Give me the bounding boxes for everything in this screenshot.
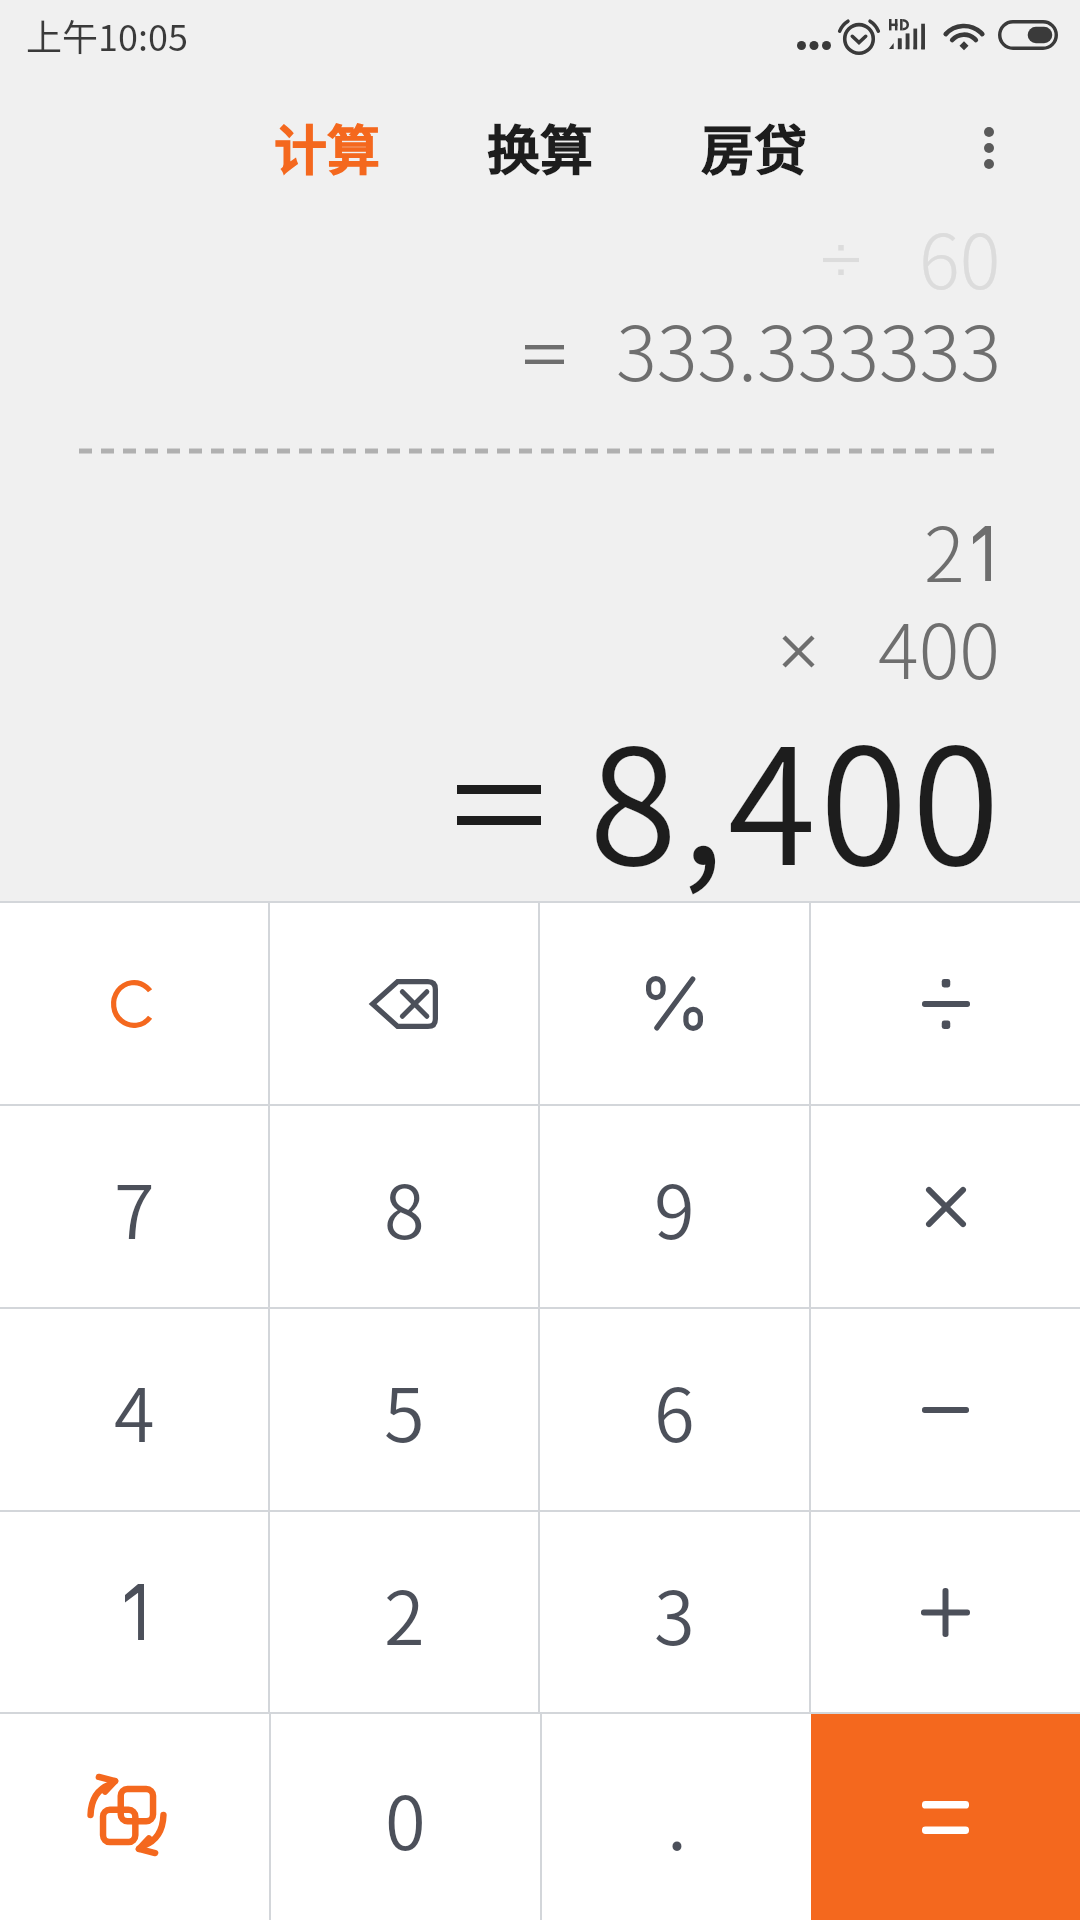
- staticText: 换算: [487, 109, 593, 186]
- button[interactable]: 6: [540, 1309, 809, 1510]
- staticText: 5: [384, 1356, 425, 1463]
- button[interactable]: Equals: [811, 1714, 1080, 1920]
- staticText: 7: [114, 1153, 155, 1260]
- button[interactable]: 3: [540, 1512, 809, 1712]
- staticText: 房贷: [701, 109, 807, 186]
- button[interactable]: Percent: [540, 903, 809, 1104]
- button[interactable]: Decimal point: [542, 1714, 811, 1920]
- button[interactable]: 换算: [465, 95, 615, 200]
- staticText: 2: [384, 1559, 425, 1666]
- staticText: 8: [384, 1153, 425, 1260]
- button[interactable]: 计算: [252, 95, 402, 200]
- button[interactable]: 4: [0, 1309, 268, 1510]
- button[interactable]: Backspace: [270, 903, 538, 1104]
- staticText: 计算: [274, 109, 380, 186]
- button[interactable]: 7: [0, 1106, 268, 1307]
- button[interactable]: Clear: [0, 903, 268, 1104]
- staticText: 333.333333: [616, 293, 1001, 403]
- staticText: 9: [654, 1153, 695, 1260]
- staticText: 0: [385, 1764, 426, 1871]
- staticText: 8,400: [589, 678, 1004, 911]
- staticText: .: [667, 1764, 687, 1871]
- button[interactable]: 2: [270, 1512, 538, 1712]
- button[interactable]: More options: [944, 103, 1034, 193]
- staticText: 4: [114, 1356, 155, 1463]
- button[interactable]: Unit converter: [0, 1714, 269, 1920]
- staticText: 6: [654, 1356, 695, 1463]
- button[interactable]: 9: [540, 1106, 809, 1307]
- button[interactable]: Divide: [811, 903, 1080, 1104]
- staticText: 2: [924, 494, 965, 604]
- button[interactable]: 1: [0, 1512, 268, 1712]
- button[interactable]: 房贷: [679, 95, 829, 200]
- button[interactable]: 0: [271, 1714, 540, 1920]
- button[interactable]: Multiply: [811, 1106, 1080, 1307]
- button[interactable]: 5: [270, 1309, 538, 1510]
- button[interactable]: Minus: [811, 1309, 1080, 1510]
- staticText: 上午10:05: [26, 9, 188, 61]
- button[interactable]: Plus: [811, 1512, 1080, 1712]
- staticText: 3: [654, 1559, 695, 1666]
- staticText: 60: [919, 201, 1001, 311]
- button[interactable]: 8: [270, 1106, 538, 1307]
- staticText: 400: [878, 591, 1000, 701]
